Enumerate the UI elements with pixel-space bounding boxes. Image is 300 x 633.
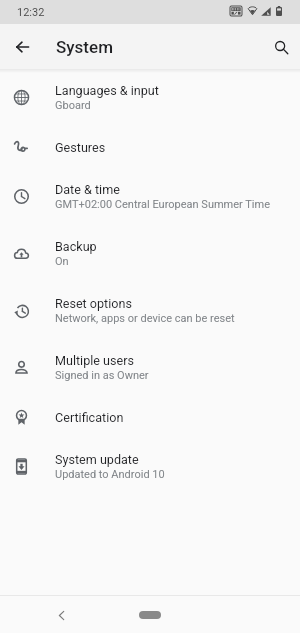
button[interactable]: Search	[265, 31, 297, 63]
button[interactable]: Certification	[0, 396, 300, 438]
staticText: System update	[55, 452, 139, 467]
button[interactable]: Backup	[0, 225, 300, 282]
staticText: 12:32	[17, 6, 45, 19]
button[interactable]: Home	[135, 607, 165, 623]
staticText: Signed in as Owner	[55, 369, 149, 382]
staticText: Gestures	[55, 140, 106, 155]
button[interactable]: Date & time	[0, 168, 300, 225]
staticText: Updated to Android 10	[55, 468, 165, 481]
staticText: Reset options	[55, 296, 132, 311]
button[interactable]: Multiple users	[0, 339, 300, 396]
staticText: Backup	[55, 239, 97, 254]
button[interactable]: Reset options	[0, 282, 300, 339]
staticText: System	[56, 37, 113, 57]
staticText: Multiple users	[55, 353, 135, 368]
button[interactable]: Gestures	[0, 126, 300, 168]
staticText: Gboard	[55, 99, 91, 112]
button[interactable]: Back	[48, 602, 74, 628]
staticText: Date & time	[55, 182, 120, 197]
staticText: On	[55, 255, 69, 268]
staticText: Certification	[55, 410, 124, 425]
staticText: Network, apps or device can be reset	[55, 312, 235, 325]
button[interactable]: Back	[6, 31, 38, 63]
button[interactable]: Languages & input	[0, 69, 300, 126]
staticText: GMT+02:00 Central European Summer Time	[55, 198, 271, 211]
button[interactable]: System update	[0, 438, 300, 495]
staticText: Languages & input	[55, 83, 159, 98]
